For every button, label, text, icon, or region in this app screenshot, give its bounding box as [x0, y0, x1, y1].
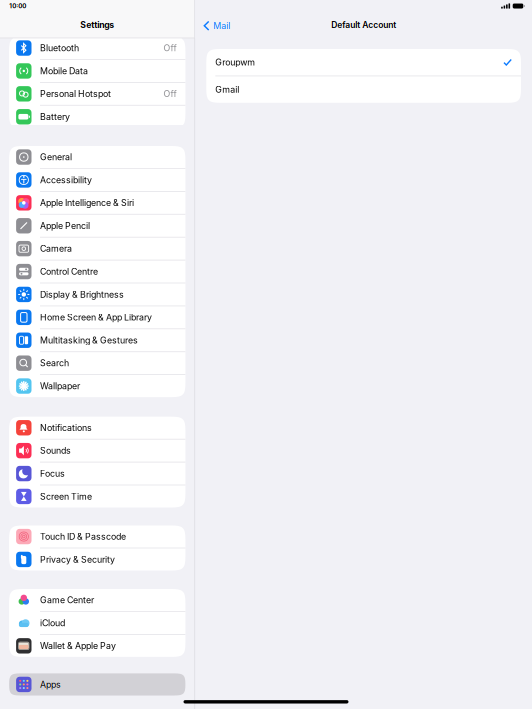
- button[interactable]: Wallet & Apple Pay: [9, 635, 185, 657]
- staticText: Gmail: [215, 84, 239, 95]
- button[interactable]: Display & Brightness: [9, 283, 185, 305]
- button[interactable]: Screen Time: [9, 485, 185, 507]
- staticText: Screen Time: [40, 491, 92, 502]
- staticText: Display & Brightness: [40, 289, 124, 300]
- staticText: Apps: [40, 679, 61, 690]
- staticText: Sounds: [40, 445, 71, 456]
- staticText: Multitasking & Gestures: [40, 335, 138, 345]
- button[interactable]: Focus: [9, 462, 185, 485]
- staticText: Off: [163, 43, 176, 53]
- staticText: General: [40, 152, 72, 162]
- staticText: 10:00: [9, 2, 26, 10]
- button[interactable]: Notifications: [9, 417, 185, 439]
- button[interactable]: Apps: [0, 673, 194, 695]
- button[interactable]: Game Center: [9, 589, 185, 611]
- staticText: Apple Intelligence & Siri: [40, 197, 134, 208]
- button[interactable]: Apple Intelligence & Siri: [9, 192, 185, 214]
- staticText: iCloud: [40, 618, 65, 628]
- button[interactable]: Apple Pencil: [9, 215, 185, 237]
- staticText: Game Center: [40, 595, 94, 605]
- staticText: Home Screen & App Library: [40, 312, 152, 323]
- staticText: Wallpaper: [40, 381, 80, 391]
- button[interactable]: Mobile Data: [9, 60, 185, 82]
- staticText: Touch ID & Passcode: [40, 531, 126, 542]
- staticText: Accessibility: [40, 175, 92, 185]
- button[interactable]: Home Screen & App Library: [9, 306, 185, 328]
- button[interactable]: Personal Hotspot: [9, 83, 185, 105]
- button[interactable]: Touch ID & Passcode: [9, 525, 185, 548]
- button[interactable]: Wallpaper: [9, 375, 185, 397]
- staticText: Mobile Data: [40, 66, 88, 76]
- staticText: Focus: [40, 468, 65, 479]
- button[interactable]: Sounds: [9, 440, 185, 462]
- staticText: Apple Pencil: [40, 220, 90, 231]
- button[interactable]: General: [9, 146, 185, 168]
- staticText: Off: [163, 88, 176, 99]
- button[interactable]: Search: [9, 352, 185, 374]
- staticText: Control Centre: [40, 266, 98, 277]
- staticText: Search: [40, 358, 69, 368]
- button[interactable]: iCloud: [9, 612, 185, 634]
- button[interactable]: Accessibility: [9, 169, 185, 191]
- button[interactable]: Mail: [195, 3, 236, 35]
- staticText: Groupwm: [215, 57, 255, 67]
- button[interactable]: Privacy & Security: [9, 548, 185, 570]
- staticText: Battery: [40, 111, 70, 122]
- staticText: Personal Hotspot: [40, 88, 111, 99]
- staticText: Mail: [213, 20, 230, 31]
- button[interactable]: Groupwm: [206, 49, 521, 75]
- button[interactable]: Bluetooth: [9, 37, 185, 59]
- staticText: Notifications: [40, 422, 92, 433]
- staticText: Camera: [40, 243, 72, 254]
- staticText: Wallet & Apple Pay: [40, 640, 116, 651]
- staticText: Bluetooth: [40, 43, 79, 53]
- staticText: Privacy & Security: [40, 554, 115, 565]
- button[interactable]: Control Centre: [9, 260, 185, 283]
- button[interactable]: Gmail: [206, 76, 521, 103]
- button[interactable]: Multitasking & Gestures: [9, 329, 185, 351]
- staticText: Default Account: [331, 20, 396, 30]
- staticText: Settings: [80, 19, 114, 30]
- button[interactable]: Battery: [9, 106, 185, 128]
- button[interactable]: Camera: [9, 238, 185, 260]
